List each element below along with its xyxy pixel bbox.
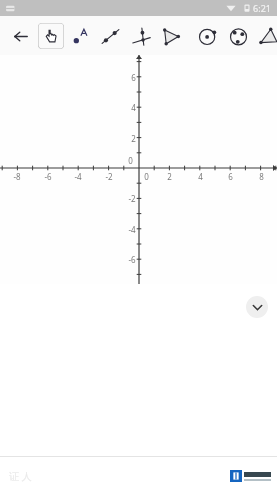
button[interactable]: Circle through three points tool <box>224 22 252 50</box>
button[interactable]: Move tool <box>38 23 64 49</box>
staticText: -4 <box>128 224 136 235</box>
staticText: 4 <box>198 171 203 182</box>
staticText: 2 <box>167 171 172 182</box>
staticText: -6 <box>128 254 136 265</box>
button[interactable]: Point tool <box>66 22 94 50</box>
staticText: -8 <box>13 171 21 182</box>
button[interactable]: Expand panel <box>246 296 268 318</box>
staticText: 8 <box>259 171 264 182</box>
button[interactable]: Perpendicular line tool <box>127 22 155 50</box>
staticText: -6 <box>44 171 52 182</box>
staticText: -4 <box>74 171 82 182</box>
staticText: 4 <box>131 102 136 113</box>
button[interactable]: Polygon tool <box>157 22 185 50</box>
staticText: 2 <box>131 133 136 144</box>
button[interactable]: Back <box>6 22 34 50</box>
button[interactable]: Line tool <box>96 22 124 50</box>
button[interactable]: Angle tool <box>254 22 277 50</box>
button[interactable]: Circle with centre tool <box>193 22 221 50</box>
staticText: 0 <box>128 155 133 166</box>
staticText: -2 <box>128 193 136 204</box>
staticText: -2 <box>105 171 113 182</box>
staticText: 6:21 <box>253 2 271 14</box>
staticText: 6 <box>131 72 136 83</box>
staticText: 0 <box>144 171 149 182</box>
staticText: 证 人 <box>9 469 32 483</box>
staticText: 6 <box>228 171 233 182</box>
